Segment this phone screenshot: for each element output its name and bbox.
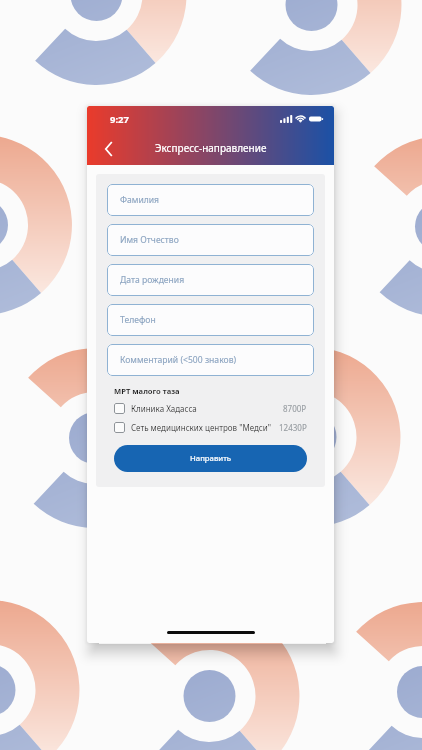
button[interactable]: Сеть медицинских центров "Медси": [114, 418, 307, 437]
staticText: 9:27: [110, 113, 129, 126]
staticText: Направить: [190, 453, 232, 464]
button[interactable]: Фамилия: [107, 184, 314, 216]
button[interactable]: Имя Отчество: [107, 224, 314, 256]
button[interactable]: Комментарий (<500 знаков): [107, 344, 314, 376]
staticText: Телефон: [120, 314, 156, 326]
staticText: Имя Отчество: [120, 234, 179, 246]
staticText: 8700Р: [283, 403, 307, 414]
button[interactable]: Back: [99, 139, 119, 159]
staticText: Сеть медицинских центров "Медси": [131, 422, 272, 433]
staticText: Комментарий (<500 знаков): [120, 354, 236, 366]
staticText: 12430Р: [279, 422, 307, 433]
staticText: Дата рождения: [120, 274, 185, 286]
staticText: Клиника Хадасса: [131, 403, 197, 414]
button[interactable]: Дата рождения: [107, 264, 314, 296]
button[interactable]: Направить: [114, 445, 307, 472]
staticText: Фамилия: [120, 194, 160, 206]
button[interactable]: Клиника Хадасса: [114, 399, 307, 418]
staticText: Экспресс-направление: [155, 141, 267, 155]
button[interactable]: Телефон: [107, 304, 314, 336]
staticText: МРТ малого таза: [114, 386, 180, 396]
